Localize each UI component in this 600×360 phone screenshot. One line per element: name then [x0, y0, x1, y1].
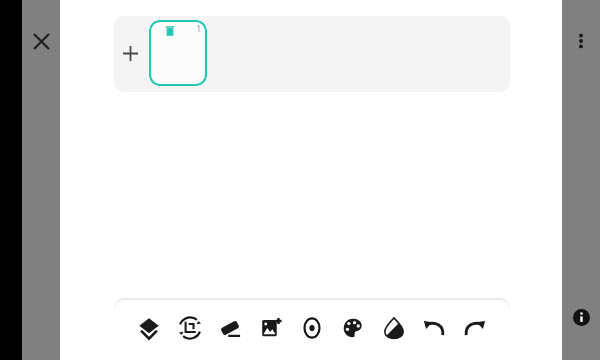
staticText: 1 — [196, 23, 201, 34]
button[interactable]: Brush size — [294, 310, 330, 346]
button[interactable]: More options — [566, 26, 596, 56]
button[interactable]: Color palette — [335, 310, 371, 346]
button[interactable]: Undo — [416, 310, 452, 346]
button[interactable]: Redo — [457, 310, 493, 346]
button[interactable]: Eraser — [212, 310, 248, 346]
button[interactable]: Rotate — [172, 310, 208, 346]
button[interactable]: Opacity — [376, 310, 412, 346]
button[interactable]: Delete page — [164, 25, 176, 37]
button[interactable]: Close — [26, 26, 56, 56]
button[interactable]: Delete page — [149, 20, 207, 86]
button[interactable]: Add page — [114, 16, 146, 90]
button[interactable]: Add image — [253, 310, 289, 346]
button[interactable]: Layers — [131, 310, 167, 346]
button[interactable]: Info — [566, 302, 596, 332]
